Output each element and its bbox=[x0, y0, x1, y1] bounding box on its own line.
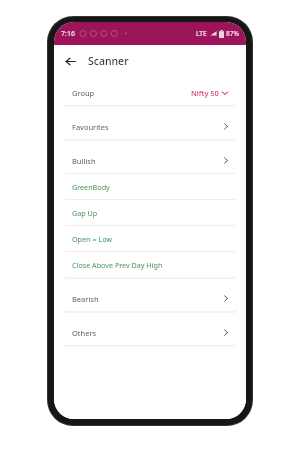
staticText: 7:16 bbox=[61, 29, 75, 39]
button[interactable]: Others bbox=[63, 320, 237, 345]
staticText: Scanner bbox=[88, 54, 129, 68]
staticText: LTE bbox=[196, 29, 207, 38]
button[interactable]: Favourites bbox=[63, 114, 237, 139]
staticText: Nifty 50 bbox=[191, 88, 219, 98]
button[interactable]: Open = Low bbox=[63, 226, 237, 251]
staticText: Group bbox=[72, 88, 95, 98]
button[interactable]: Bearish bbox=[63, 286, 237, 311]
staticText: 87% bbox=[226, 29, 239, 38]
button[interactable]: Gap Up bbox=[63, 200, 237, 225]
staticText: Bearish bbox=[72, 294, 99, 304]
button[interactable]: Back bbox=[60, 51, 80, 71]
button[interactable]: Bullish bbox=[63, 148, 237, 173]
staticText: Close Above Prev Day High bbox=[72, 260, 163, 270]
button[interactable]: Close Above Prev Day High bbox=[63, 252, 237, 277]
staticText: Others bbox=[72, 328, 97, 338]
button[interactable]: GreenBody bbox=[63, 174, 237, 199]
staticText: Favourites bbox=[72, 122, 109, 132]
staticText: Gap Up bbox=[72, 208, 98, 218]
button[interactable]: Group bbox=[63, 80, 237, 105]
staticText: Open = Low bbox=[72, 234, 112, 244]
staticText: Bullish bbox=[72, 156, 96, 166]
staticText: GreenBody bbox=[72, 182, 110, 192]
